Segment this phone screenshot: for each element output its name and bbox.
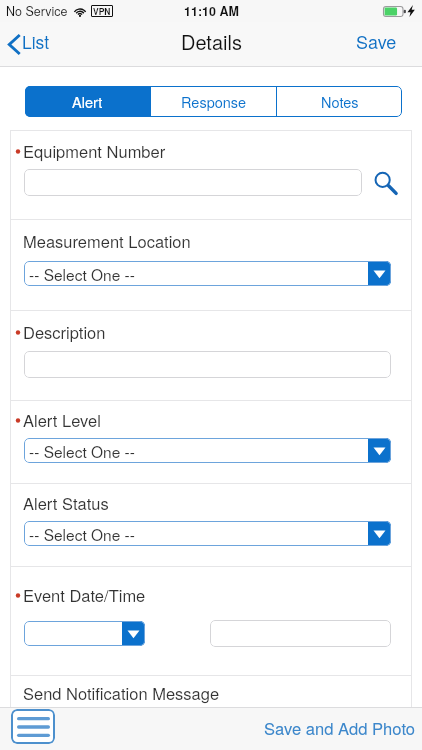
staticText: Save and Add Photo — [264, 716, 416, 740]
staticText: Details — [181, 27, 242, 56]
staticText: Alert — [72, 91, 103, 112]
staticText: Save — [356, 28, 397, 54]
button[interactable] — [24, 621, 145, 646]
button[interactable]: Alert — [25, 86, 150, 117]
staticText: Response — [181, 91, 247, 112]
button[interactable] — [24, 351, 391, 378]
button[interactable]: Save and Add Photo — [254, 708, 422, 750]
staticText: 11:10 AM — [184, 2, 239, 20]
button[interactable]: -- Select One -- — [24, 261, 391, 286]
staticText: Event Date/Time — [23, 583, 146, 607]
staticText: List — [22, 29, 50, 54]
button[interactable]: -- Select One -- — [24, 438, 391, 463]
staticText: Description — [23, 320, 106, 344]
staticText: Measurement Location — [23, 229, 191, 253]
staticText: Send Notification Message — [23, 681, 220, 705]
staticText: Equipment Number — [23, 139, 166, 163]
button[interactable]: Search equipment number — [371, 168, 401, 198]
button[interactable]: Notes — [277, 86, 402, 117]
button[interactable]: List — [0, 22, 65, 67]
button[interactable]: Response — [151, 86, 276, 117]
staticText: Notes — [321, 91, 359, 112]
button[interactable]: Menu — [11, 709, 55, 744]
staticText: No Service — [6, 2, 68, 20]
staticText: -- Select One -- — [29, 263, 135, 285]
button[interactable] — [24, 169, 362, 196]
staticText: Alert Status — [23, 491, 109, 515]
button[interactable] — [210, 620, 391, 647]
staticText: Alert Level — [23, 408, 101, 432]
staticText: -- Select One -- — [29, 523, 135, 545]
button[interactable]: -- Select One -- — [24, 521, 391, 546]
staticText: VPN — [93, 5, 111, 17]
staticText: -- Select One -- — [29, 440, 135, 462]
button[interactable]: Save — [342, 22, 422, 67]
